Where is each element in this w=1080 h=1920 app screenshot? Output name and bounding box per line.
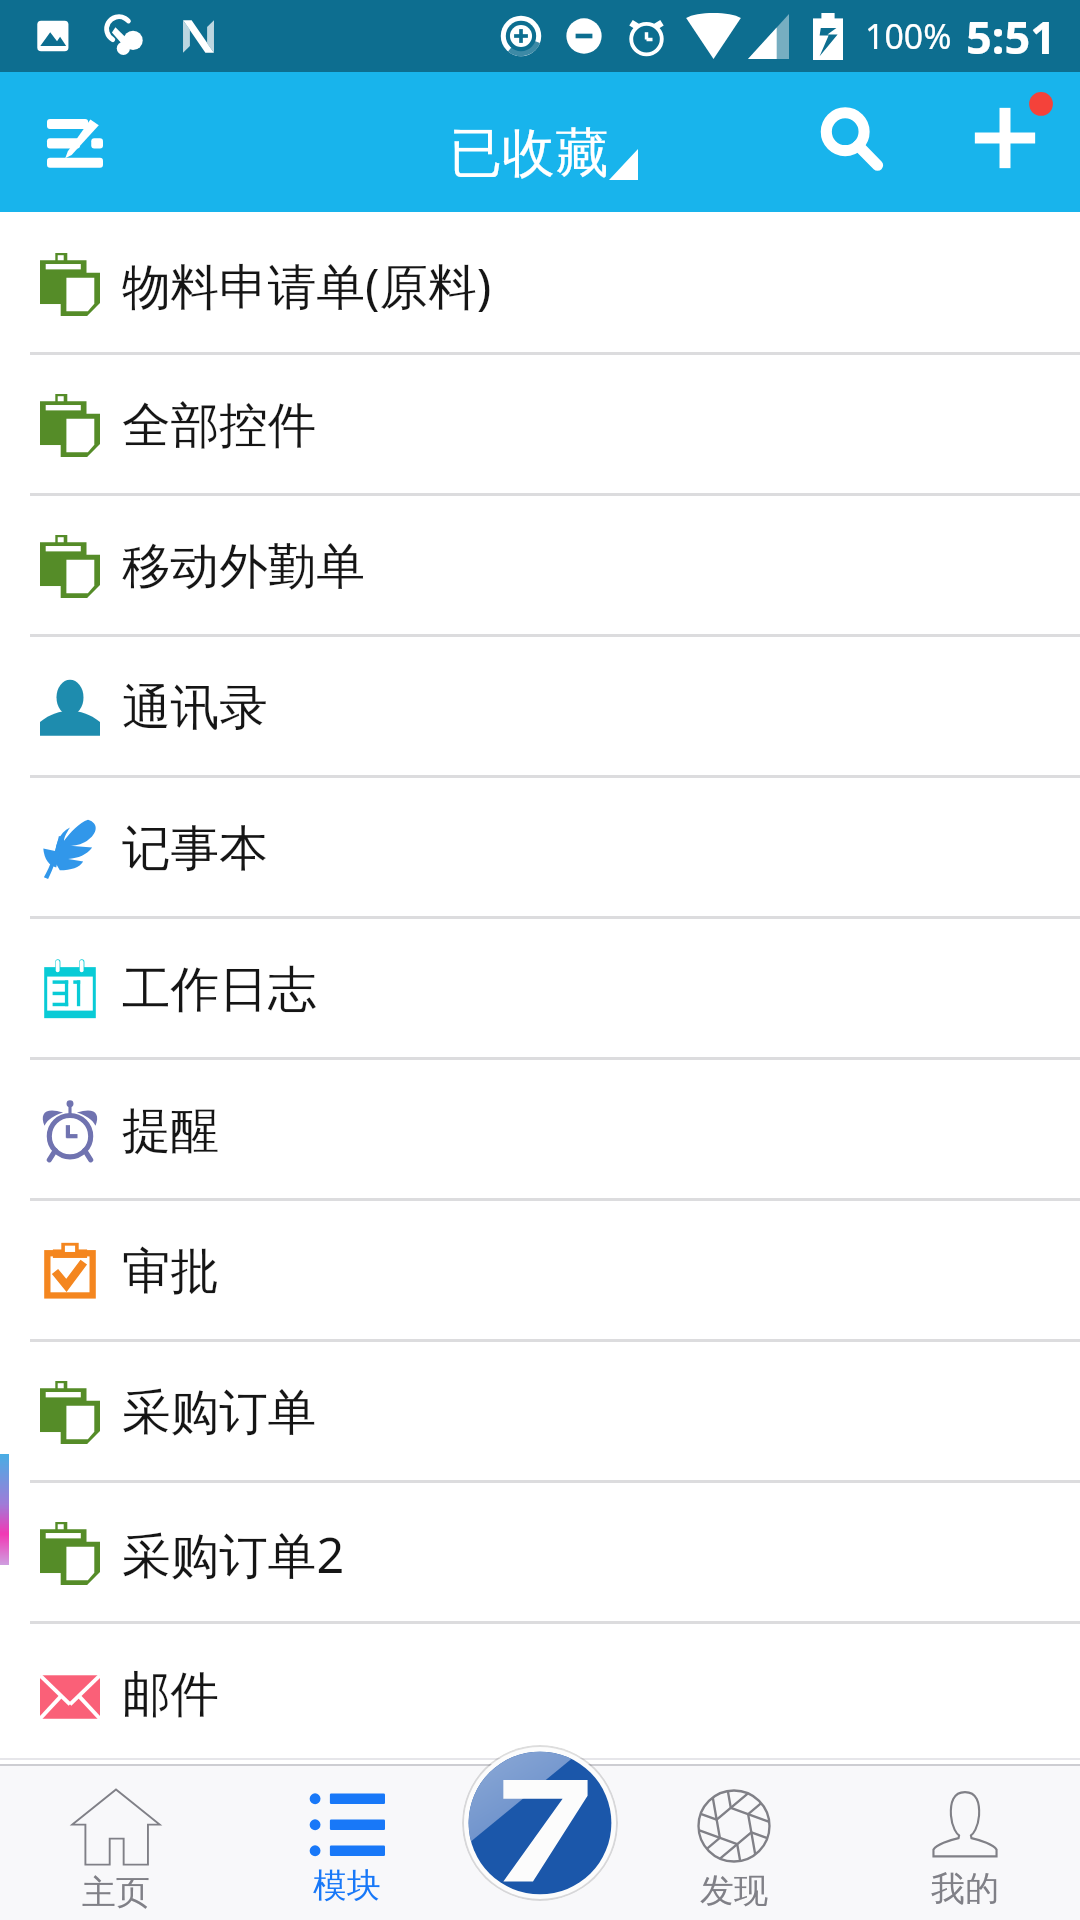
button[interactable]: 工作日志: [0, 919, 1080, 1060]
button[interactable]: Add: [930, 72, 1080, 212]
staticText: 工作日志: [122, 959, 317, 1020]
staticText: 审批: [122, 1241, 220, 1302]
button[interactable]: 模块: [231, 1766, 462, 1920]
staticText: 已收藏: [449, 120, 609, 187]
staticText: 采购订单2: [122, 1521, 345, 1587]
staticText: 5:51: [966, 6, 1056, 67]
button[interactable]: 全部控件: [0, 355, 1080, 496]
staticText: 100%: [865, 13, 952, 59]
button[interactable]: 审批: [0, 1201, 1080, 1342]
staticText: 提醒: [122, 1100, 220, 1161]
staticText: 主页: [82, 1871, 150, 1914]
button[interactable]: 发现: [618, 1766, 849, 1920]
staticText: 记事本: [122, 818, 268, 879]
staticText: 发现: [700, 1869, 768, 1912]
staticText: 全部控件: [122, 395, 317, 456]
staticText: 我的: [931, 1867, 999, 1910]
staticText: 模块: [313, 1864, 381, 1907]
button[interactable]: 物料申请单(原料): [0, 214, 1080, 355]
staticText: 物料申请单(原料): [122, 252, 492, 318]
staticText: 移动外勤单: [122, 536, 365, 597]
staticText: 邮件: [122, 1664, 220, 1725]
button[interactable]: Search: [774, 72, 930, 212]
button[interactable]: 已收藏: [449, 120, 638, 187]
button[interactable]: 采购订单2: [0, 1483, 1080, 1624]
button[interactable]: 记事本: [0, 778, 1080, 919]
button[interactable]: Edit list: [0, 72, 147, 212]
button[interactable]: 我的: [849, 1766, 1080, 1920]
staticText: 采购订单: [122, 1382, 317, 1443]
button[interactable]: 主页: [0, 1766, 231, 1920]
button[interactable]: 移动外勤单: [0, 496, 1080, 637]
staticText: 通讯录: [122, 677, 268, 738]
button[interactable]: 提醒: [0, 1060, 1080, 1201]
button[interactable]: 采购订单: [0, 1342, 1080, 1483]
button[interactable]: Seven home: [462, 1745, 618, 1901]
button[interactable]: 邮件: [0, 1624, 1080, 1765]
button[interactable]: 通讯录: [0, 637, 1080, 778]
